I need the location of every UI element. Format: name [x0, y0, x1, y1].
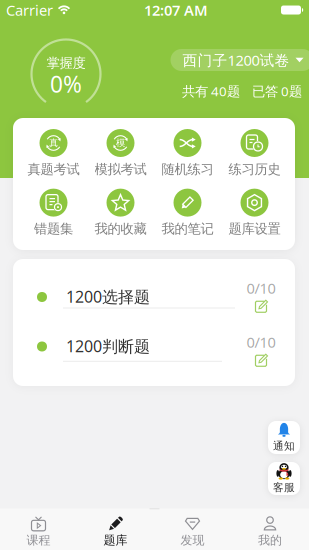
- staticText: 练习历史: [228, 161, 280, 177]
- staticText: 0%: [50, 69, 82, 99]
- staticText: 错题集: [34, 221, 73, 237]
- staticText: 课程: [26, 533, 50, 548]
- staticText: 模: [116, 137, 125, 149]
- staticText: 12:07 AM: [144, 0, 208, 20]
- staticText: 0/10: [246, 332, 275, 352]
- staticText: 0/10: [246, 278, 275, 298]
- button[interactable]: 发现: [154, 509, 231, 550]
- button[interactable]: 模: [87, 129, 154, 177]
- staticText: 真题考试: [27, 161, 79, 177]
- staticText: 客服: [273, 481, 295, 494]
- staticText: 西门子1200试卷: [182, 50, 289, 70]
- button[interactable]: 西门子1200试卷: [170, 49, 309, 71]
- button[interactable]: 随机练习: [154, 129, 221, 177]
- staticText: 已答 0题: [252, 82, 302, 100]
- button[interactable]: 1200选择题: [13, 259, 295, 386]
- button[interactable]: 题库: [77, 509, 154, 550]
- staticText: 共有 40题: [182, 82, 240, 100]
- button[interactable]: 练习历史: [221, 129, 288, 177]
- staticText: 真: [49, 137, 58, 149]
- button[interactable]: 我的收藏: [87, 189, 154, 237]
- staticText: 通知: [273, 439, 295, 452]
- button[interactable]: 题库设置: [221, 189, 288, 237]
- staticText: 模拟考试: [94, 161, 146, 177]
- staticText: 我的收藏: [94, 221, 146, 237]
- button[interactable]: 通知: [268, 421, 300, 454]
- button[interactable]: 1200判断题: [13, 259, 295, 386]
- button[interactable]: 课程: [0, 509, 77, 550]
- staticText: 发现: [180, 533, 204, 548]
- button[interactable]: 我的: [231, 509, 309, 550]
- staticText: 我的: [258, 533, 282, 548]
- button[interactable]: 客服: [268, 462, 300, 495]
- staticText: 题库: [103, 533, 127, 548]
- button[interactable]: 我的笔记: [154, 189, 221, 237]
- button[interactable]: 错题集: [20, 189, 87, 237]
- staticText: 题库设置: [228, 221, 280, 237]
- staticText: 1200判断题: [66, 335, 150, 357]
- staticText: 1200选择题: [66, 286, 150, 307]
- staticText: Carrier: [6, 0, 53, 20]
- staticText: 随机练习: [161, 161, 213, 177]
- staticText: 掌握度: [46, 55, 85, 71]
- staticText: 我的笔记: [161, 221, 213, 237]
- button[interactable]: 真: [20, 129, 87, 177]
